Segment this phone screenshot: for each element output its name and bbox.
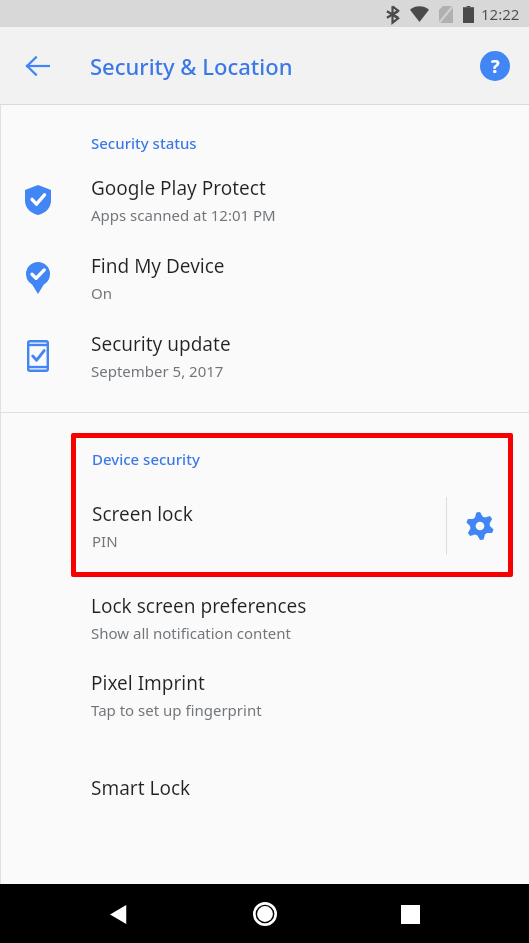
staticText: ? — [491, 54, 500, 79]
staticText: Google Play Protect — [91, 175, 266, 201]
button[interactable]: Smart Lock — [0, 775, 529, 801]
staticText: On — [91, 283, 112, 303]
staticText: Show all notification content — [91, 623, 291, 643]
staticText: Security & Location — [90, 51, 293, 81]
staticText: Find My Device — [91, 253, 225, 279]
button[interactable]: Lock screen preferences — [0, 593, 529, 643]
button[interactable]: Find My Device — [0, 253, 529, 303]
button[interactable]: Back — [93, 888, 145, 940]
staticText: Screen lock — [92, 501, 193, 527]
staticText: Device security — [92, 449, 200, 469]
staticText: Smart Lock — [91, 775, 191, 801]
staticText: Security status — [91, 133, 197, 153]
staticText: September 5, 2017 — [91, 361, 224, 381]
button[interactable]: Help — [473, 44, 517, 88]
button[interactable]: Screen lock — [71, 501, 446, 551]
button[interactable]: Screen lock settings — [447, 493, 513, 559]
button[interactable]: Recents — [384, 888, 436, 940]
staticText: Apps scanned at 12:01 PM — [91, 205, 276, 225]
button[interactable]: Pixel Imprint — [0, 670, 529, 720]
button[interactable]: Back — [14, 42, 62, 90]
staticText: 12:22 — [481, 4, 520, 24]
staticText: PIN — [92, 531, 118, 551]
button[interactable]: Home — [239, 888, 291, 940]
button[interactable]: Google Play Protect — [0, 175, 529, 225]
staticText: Lock screen preferences — [91, 593, 307, 619]
staticText: Pixel Imprint — [91, 670, 205, 696]
staticText: Security update — [91, 331, 231, 357]
staticText: Tap to set up fingerprint — [91, 700, 262, 720]
button[interactable]: Security update — [0, 331, 529, 381]
